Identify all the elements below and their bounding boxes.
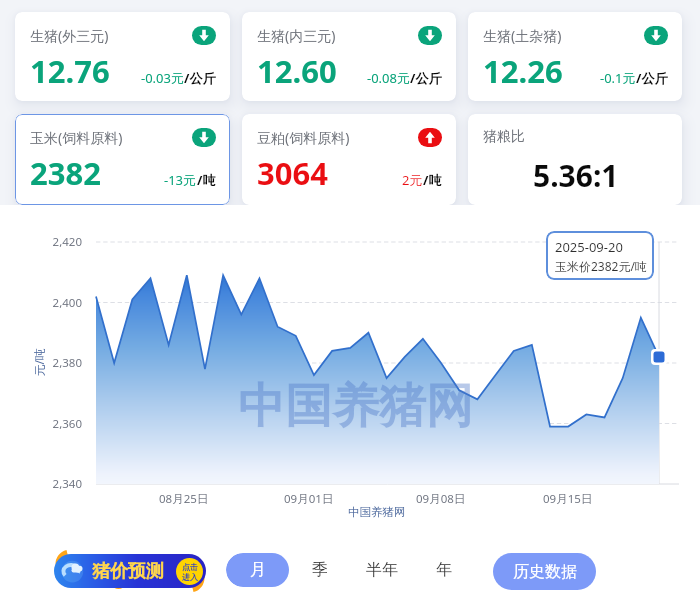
staticText: 5.36:1 xyxy=(533,155,619,196)
staticText: 猪粮比 xyxy=(483,128,525,146)
staticText: 中国养猪网 xyxy=(238,377,473,436)
staticText: 玉米(饲料原料) xyxy=(30,128,123,147)
staticText: 2,340 xyxy=(36,476,82,492)
button[interactable]: 玉米(饲料原料) xyxy=(15,114,230,205)
button[interactable]: 猪粮比 xyxy=(468,114,682,205)
other: Price decreased xyxy=(192,26,216,45)
staticText: 2025-09-20 xyxy=(555,238,623,256)
staticText: /吨 xyxy=(423,171,442,189)
other: Price increased xyxy=(418,128,442,147)
staticText: 2382 xyxy=(30,152,101,194)
staticText: 09月15日 xyxy=(543,491,593,507)
button[interactable]: 猪价预测 xyxy=(54,554,206,588)
staticText: -13元 xyxy=(164,171,197,189)
button[interactable]: 生猪(内三元) xyxy=(242,12,456,101)
button[interactable]: 生猪(土杂猪) xyxy=(468,12,682,101)
staticText: /公斤 xyxy=(636,69,668,87)
staticText: 3064 xyxy=(257,152,328,194)
staticText: 季 xyxy=(312,560,328,580)
staticText: 元/吨 xyxy=(30,347,46,376)
button[interactable]: 半年 xyxy=(350,553,413,587)
staticText: /公斤 xyxy=(184,69,216,87)
staticText: /公斤 xyxy=(410,69,442,87)
staticText: 中国养猪网 xyxy=(348,505,406,519)
staticText: -0.08元 xyxy=(367,69,410,87)
button[interactable]: 年 xyxy=(413,553,474,587)
button[interactable]: 季 xyxy=(289,553,350,587)
other: Price decreased xyxy=(644,26,668,45)
staticText: -0.03元 xyxy=(141,69,184,87)
other: Price decreased xyxy=(418,26,442,45)
staticText: 半年 xyxy=(366,560,398,580)
staticText: 月 xyxy=(250,560,266,580)
staticText: 点击 xyxy=(182,562,198,572)
staticText: 历史数据 xyxy=(513,562,577,582)
staticText: 12.76 xyxy=(30,50,110,92)
staticText: 09月08日 xyxy=(416,491,466,507)
staticText: 09月01日 xyxy=(284,491,334,507)
button[interactable]: 历史数据 xyxy=(493,553,596,590)
staticText: 玉米价2382元/吨 xyxy=(555,258,647,274)
staticText: /吨 xyxy=(197,171,216,189)
staticText: 2,380 xyxy=(36,355,82,371)
staticText: 2元 xyxy=(402,171,423,189)
button[interactable]: 生猪(外三元) xyxy=(15,12,230,101)
other: Price decreased xyxy=(192,128,216,147)
staticText: 2,400 xyxy=(36,295,82,311)
staticText: 12.26 xyxy=(483,50,563,92)
button[interactable]: 月 xyxy=(226,553,289,587)
staticText: 生猪(土杂猪) xyxy=(483,26,562,45)
staticText: 豆粕(饲料原料) xyxy=(257,128,350,147)
staticText: -0.1元 xyxy=(600,69,636,87)
staticText: 2,420 xyxy=(36,234,82,250)
button[interactable]: 豆粕(饲料原料) xyxy=(242,114,456,205)
staticText: 12.60 xyxy=(257,50,337,92)
staticText: 生猪(外三元) xyxy=(30,26,109,45)
staticText: 08月25日 xyxy=(159,491,209,507)
staticText: 进入 xyxy=(182,572,198,582)
staticText: 生猪(内三元) xyxy=(257,26,336,45)
staticText: 年 xyxy=(436,560,452,580)
staticText: 猪价预测 xyxy=(92,560,164,583)
staticText: 2,360 xyxy=(36,416,82,432)
